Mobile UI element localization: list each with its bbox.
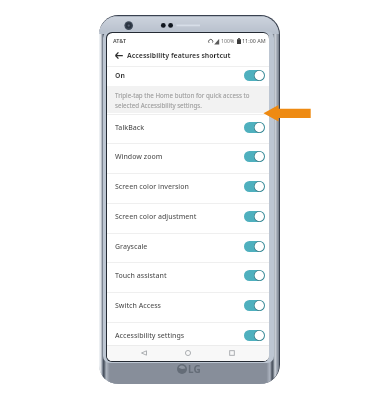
button[interactable]: Switch Access — [107, 292, 269, 322]
button[interactable]: Toggle on — [244, 300, 265, 311]
staticText: LG — [188, 362, 201, 376]
button[interactable]: Navigate up — [112, 49, 125, 62]
button[interactable]: Toggle on — [244, 241, 265, 252]
button[interactable]: Toggle on — [244, 151, 265, 162]
staticText: Triple-tap the Home button for quick acc… — [115, 91, 250, 109]
staticText: Accessibility settings — [115, 331, 185, 341]
button[interactable]: TalkBack — [107, 114, 269, 144]
button[interactable]: Toggle on — [244, 122, 265, 133]
button[interactable]: Toggle on — [244, 270, 265, 281]
button[interactable]: Toggle on — [244, 181, 265, 192]
staticText: Screen color inversion — [115, 182, 189, 192]
staticText: AT&T — [113, 37, 127, 44]
staticText: Touch assistant — [115, 271, 167, 281]
button[interactable]: Grayscale — [107, 233, 269, 263]
staticText: Accessibility features shortcut — [127, 51, 231, 60]
button[interactable]: Toggle on — [244, 70, 265, 81]
button[interactable]: Screen color adjustment — [107, 203, 269, 233]
button[interactable]: Touch assistant — [107, 262, 269, 292]
button[interactable]: On — [107, 66, 269, 86]
button[interactable]: Accessibility settings — [107, 322, 269, 352]
button[interactable]: Window zoom — [107, 143, 269, 173]
staticText: Switch Access — [115, 301, 161, 311]
button[interactable]: Back — [137, 346, 151, 360]
button[interactable]: Screen color inversion — [107, 173, 269, 203]
button[interactable]: Home — [181, 346, 195, 360]
staticText: On — [115, 71, 125, 80]
staticText: Window zoom — [115, 152, 163, 162]
staticText: 11:00 AM — [242, 37, 266, 44]
button[interactable]: Toggle on — [244, 330, 265, 341]
button[interactable]: Toggle on — [244, 211, 265, 222]
staticText: 100% — [221, 37, 235, 44]
staticText: TalkBack — [115, 123, 145, 133]
button[interactable]: Recent apps — [225, 346, 239, 360]
staticText: Screen color adjustment — [115, 212, 197, 222]
staticText: Grayscale — [115, 242, 148, 252]
